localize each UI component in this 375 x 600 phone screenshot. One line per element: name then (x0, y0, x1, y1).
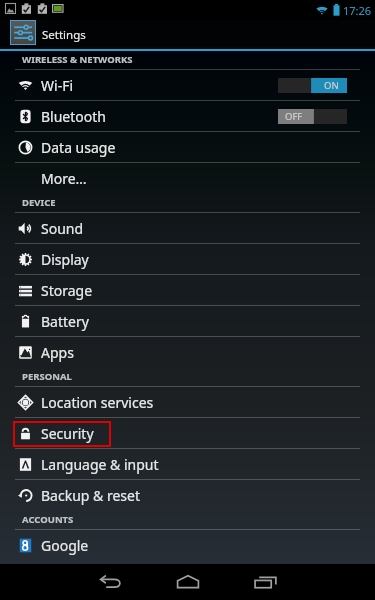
button[interactable]: Location services (0, 387, 375, 418)
button[interactable]: Security (0, 418, 375, 449)
staticText: Sound (41, 219, 84, 238)
staticText: Language & input (41, 455, 159, 474)
button[interactable]: Sound (0, 213, 375, 244)
staticText: Security (41, 424, 94, 443)
button[interactable]: Home (158, 564, 218, 600)
button[interactable]: Display (0, 244, 375, 275)
button[interactable]: Data usage (0, 132, 375, 163)
staticText: Storage (41, 281, 93, 300)
staticText: 17:26 (343, 3, 372, 18)
staticText: PERSONAL (22, 370, 72, 383)
staticText: Backup & reset (41, 486, 140, 505)
button[interactable]: Wi-Fi (0, 70, 375, 101)
staticText: Settings (42, 27, 86, 43)
button[interactable]: Apps (0, 337, 375, 368)
staticText: Battery (41, 312, 89, 331)
staticText: DEVICE (22, 196, 56, 209)
staticText: OFF (285, 110, 303, 123)
staticText: Bluetooth (41, 107, 106, 126)
staticText: Wi-Fi (41, 76, 74, 95)
button[interactable]: Recent apps (236, 564, 296, 600)
button[interactable]: Back (80, 564, 140, 600)
staticText: Apps (41, 343, 74, 362)
button[interactable]: Settings app icon (10, 20, 36, 45)
button[interactable]: Off (278, 109, 347, 124)
staticText: More… (41, 169, 87, 188)
staticText: Google (41, 536, 89, 555)
button[interactable]: Storage (0, 275, 375, 306)
staticText: ON (324, 79, 339, 92)
staticText: Display (41, 250, 89, 269)
button[interactable]: Language & input (0, 449, 375, 480)
button[interactable]: Bluetooth (0, 101, 375, 132)
staticText: Data usage (41, 138, 116, 157)
button[interactable]: Backup & reset (0, 480, 375, 511)
staticText: WIRELESS & NETWORKS (22, 53, 133, 66)
staticText: Location services (41, 393, 154, 412)
button[interactable]: Battery (0, 306, 375, 337)
button[interactable]: Google (0, 530, 375, 561)
button[interactable]: More… (0, 163, 375, 194)
button[interactable]: On (278, 78, 347, 93)
staticText: ACCOUNTS (22, 513, 74, 526)
